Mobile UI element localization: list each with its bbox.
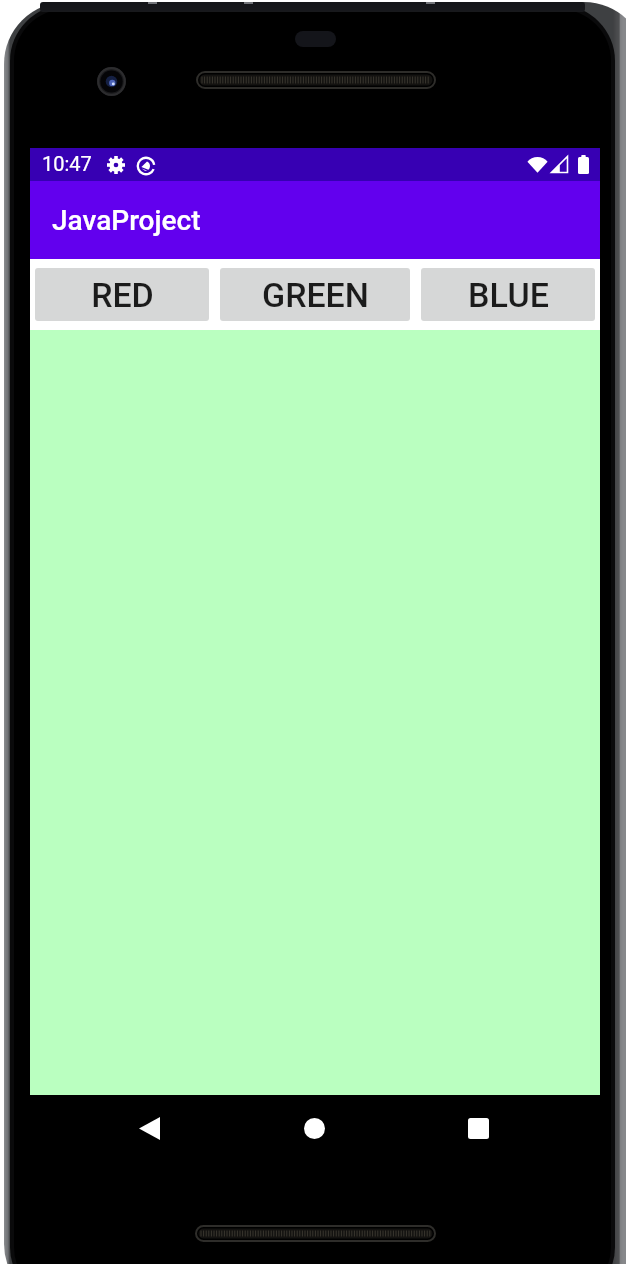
staticText: JavaProject xyxy=(52,204,201,237)
button[interactable]: BLUE xyxy=(421,268,595,321)
button[interactable]: JavaProject xyxy=(30,181,600,259)
staticText: RED xyxy=(91,275,154,315)
button[interactable]: Home xyxy=(304,1118,325,1139)
button[interactable]: Back xyxy=(138,1117,161,1140)
button[interactable]: Recent apps xyxy=(468,1118,489,1139)
staticText: BLUE xyxy=(468,275,549,315)
button[interactable]: RED xyxy=(35,268,209,321)
staticText: 10:47 xyxy=(42,152,92,175)
button[interactable]: GREEN xyxy=(220,268,410,321)
staticText: GREEN xyxy=(262,275,369,315)
